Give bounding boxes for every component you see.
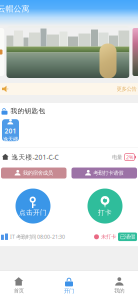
button[interactable]: 考勤打卡请假 [71, 167, 137, 178]
button[interactable]: 开门 [44, 271, 94, 300]
staticText: 我的 [114, 287, 124, 294]
staticText: 2% [126, 154, 133, 161]
button[interactable]: 打卡 [69, 188, 138, 223]
staticText: 已请假 [120, 233, 135, 240]
staticText: 逸天楼 [3, 136, 18, 142]
staticText: 打卡 [98, 208, 112, 217]
button[interactable]: 我的宿舍成员 [1, 167, 66, 178]
staticText: 逸天楼-201-C-C [11, 153, 58, 162]
staticText: 更多公告 [116, 86, 136, 92]
button[interactable]: 更多公告 [0, 78, 138, 99]
staticText: 考勤打卡请假 [93, 170, 123, 176]
staticText: 首页 [14, 287, 24, 294]
button[interactable]: 点击开门 [0, 188, 69, 223]
button[interactable]: 我的 [94, 271, 138, 300]
staticText: 我的钥匙包 [10, 107, 45, 115]
staticText: 开门 [64, 288, 74, 294]
button[interactable]: 201 [2, 119, 19, 141]
staticText: 我的宿舍成员 [23, 170, 53, 176]
staticText: 201 [4, 126, 16, 135]
staticText: 云帽公寓 [0, 4, 29, 14]
staticText: 点击开门 [19, 208, 47, 217]
staticText: IT 考勤时间 08:00-21:30 [10, 233, 65, 240]
staticText: 电量 [112, 154, 122, 160]
button[interactable]: 首页 [0, 271, 44, 300]
staticText: 未打卡 [101, 233, 116, 240]
